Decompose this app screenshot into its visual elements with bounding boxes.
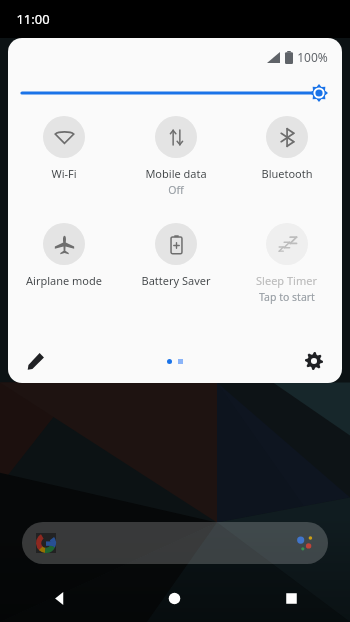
button[interactable]: Wi-Fi [8,114,120,183]
button[interactable]: Settings [296,343,332,379]
button[interactable]: Mobile data [120,114,231,199]
button[interactable]: Battery Saver [120,221,231,290]
staticText: Airplane mode [26,273,102,288]
button[interactable]: Sleep Timer [231,221,342,306]
staticText: Tap to start [259,290,315,304]
staticText: Bluetooth [261,166,313,181]
button[interactable]: Bluetooth [231,114,342,183]
staticText: 100% [297,49,328,65]
staticText: Off [168,183,184,197]
button[interactable]: Back [0,575,116,622]
staticText: Wi-Fi [51,166,77,181]
button[interactable]: Recents [233,575,350,622]
button[interactable]: Edit tiles [18,343,54,379]
staticText: 11:00 [16,10,50,28]
button[interactable]: Home [116,575,233,622]
staticText: Battery Saver [141,273,211,288]
button[interactable] [22,522,328,564]
button[interactable]: Airplane mode [8,221,120,290]
staticText: Sleep Timer [256,273,317,288]
staticText: Mobile data [145,166,207,181]
